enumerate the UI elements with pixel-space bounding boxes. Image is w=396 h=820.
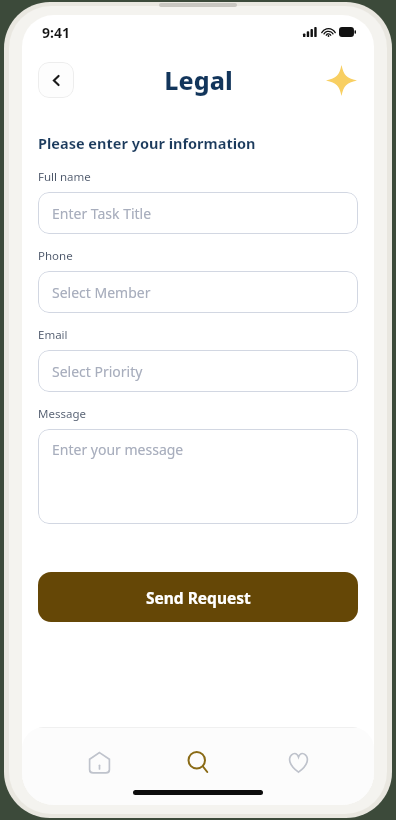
button[interactable]: Select Priority [38, 350, 358, 392]
button[interactable]: Enter your message [38, 429, 358, 524]
button[interactable]: Enter Task Title [38, 192, 358, 234]
staticText: Phone [38, 248, 73, 264]
staticText: Select Priority [52, 362, 143, 381]
staticText: Message [38, 406, 86, 422]
button[interactable]: Home [76, 739, 122, 785]
staticText: Please enter your information [38, 133, 256, 153]
button[interactable]: Back [38, 62, 74, 98]
button[interactable]: Send Request [38, 572, 358, 622]
button[interactable]: Select Member [38, 271, 358, 313]
staticText: Send Request [146, 587, 251, 608]
staticText: Email [38, 327, 68, 343]
staticText: Legal [164, 63, 233, 97]
button[interactable]: AI assistant [322, 61, 360, 99]
staticText: 9:41 [42, 23, 70, 42]
staticText: Enter Task Title [52, 204, 152, 223]
button[interactable]: Search [175, 739, 221, 785]
staticText: Select Member [52, 283, 151, 302]
button[interactable]: Favorites [275, 739, 321, 785]
staticText: Enter your message [52, 440, 184, 459]
staticText: Full name [38, 169, 91, 185]
